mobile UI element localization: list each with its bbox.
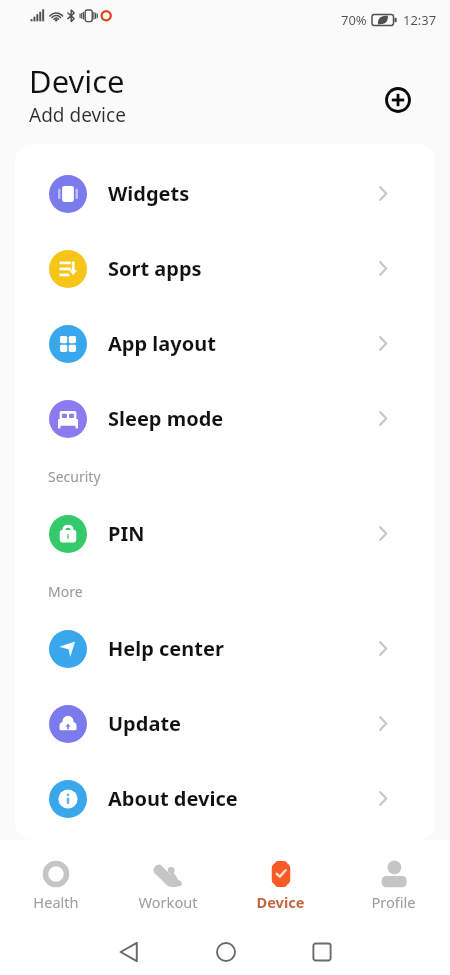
button[interactable]: PIN xyxy=(15,496,435,571)
button[interactable]: App layout xyxy=(15,306,435,381)
staticText: 70% xyxy=(341,11,367,29)
button[interactable]: Health xyxy=(0,840,112,927)
button[interactable]: Home xyxy=(201,928,250,975)
staticText: PIN xyxy=(108,520,145,547)
button[interactable]: Sleep mode xyxy=(15,381,435,456)
staticText: Add device xyxy=(29,102,126,128)
button[interactable]: Update xyxy=(15,686,435,761)
button[interactable]: Workout xyxy=(112,840,224,927)
button[interactable]: Help center xyxy=(15,611,435,686)
staticText: Widgets xyxy=(108,180,190,207)
button[interactable]: Widgets xyxy=(15,156,435,231)
button[interactable]: About device xyxy=(15,761,435,836)
staticText: Device xyxy=(256,892,305,912)
button[interactable]: Recents xyxy=(297,928,346,975)
staticText: Security xyxy=(48,467,101,486)
button[interactable]: Profile xyxy=(337,840,450,927)
staticText: More xyxy=(48,582,83,601)
staticText: Update xyxy=(108,710,181,737)
button[interactable]: Device xyxy=(224,840,337,927)
button[interactable]: Sort apps xyxy=(15,231,435,306)
button[interactable]: Back xyxy=(104,928,153,975)
staticText: Help center xyxy=(108,635,224,662)
staticText: Health xyxy=(33,892,79,912)
staticText: About device xyxy=(108,785,238,812)
staticText: Profile xyxy=(371,892,416,912)
staticText: Sleep mode xyxy=(108,405,224,432)
staticText: 12:37 xyxy=(403,11,437,29)
button[interactable]: Add device xyxy=(384,86,412,114)
staticText: Sort apps xyxy=(108,255,202,282)
staticText: Workout xyxy=(138,892,198,912)
staticText: Device xyxy=(29,60,125,102)
staticText: App layout xyxy=(108,330,216,357)
